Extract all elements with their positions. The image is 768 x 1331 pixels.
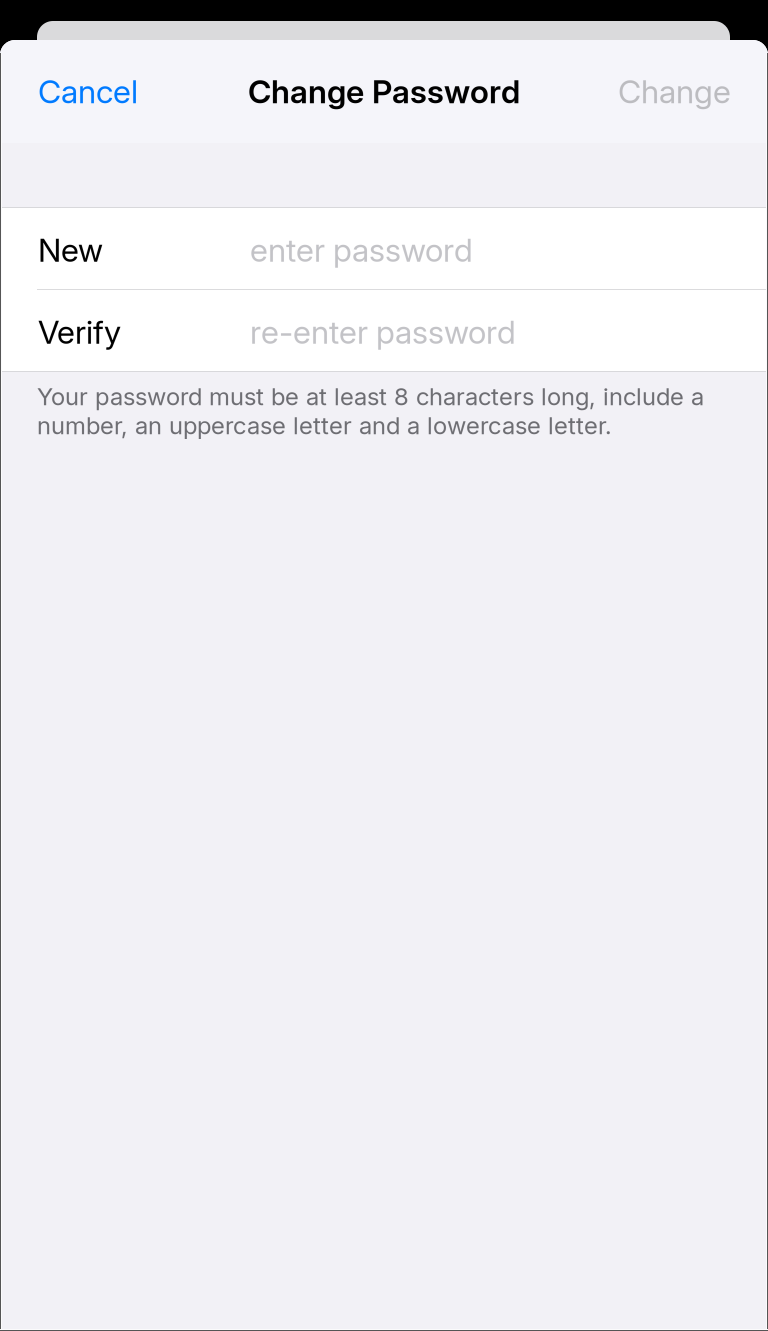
- staticText: Your password must be at least 8 charact…: [37, 382, 704, 440]
- staticText: Verify: [38, 313, 121, 351]
- staticText: re-enter password: [250, 313, 516, 351]
- button[interactable]: Verify: [0, 290, 768, 371]
- staticText: Change: [618, 72, 731, 111]
- button[interactable]: Cancel: [38, 61, 138, 121]
- staticText: New: [38, 231, 103, 269]
- staticText: enter password: [250, 231, 473, 269]
- button[interactable]: New: [0, 208, 768, 289]
- staticText: Change Password: [248, 72, 520, 111]
- staticText: Cancel: [38, 72, 138, 111]
- button[interactable]: Change: [618, 61, 731, 121]
